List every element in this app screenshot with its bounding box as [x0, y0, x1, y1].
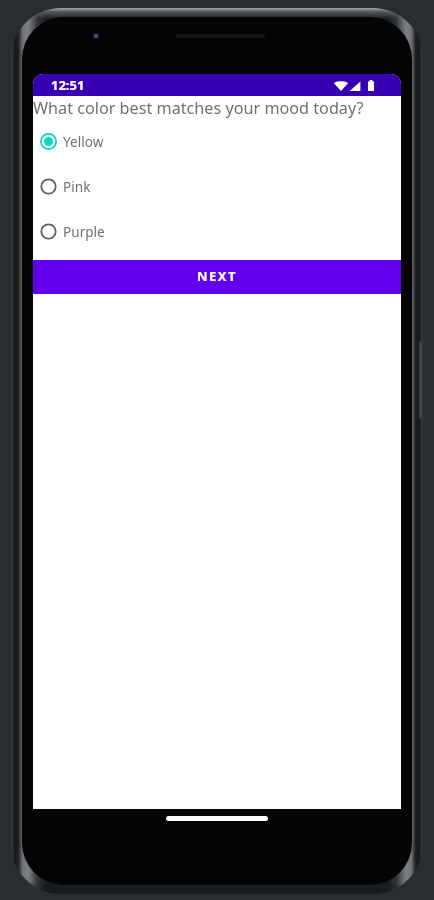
staticText: Pink: [63, 177, 91, 196]
button[interactable]: Purple: [33, 209, 401, 254]
button[interactable]: Yellow: [33, 119, 401, 164]
other: Mobile signal: [349, 79, 361, 91]
button[interactable]: NEXT: [33, 260, 401, 294]
other: Wi-Fi: [334, 79, 348, 91]
button[interactable]: Pink: [33, 164, 401, 209]
staticText: What color best matches your mood today?: [33, 97, 364, 119]
other: Battery: [367, 79, 375, 91]
staticText: NEXT: [197, 267, 238, 285]
staticText: Purple: [63, 222, 105, 241]
staticText: Yellow: [63, 132, 104, 151]
staticText: 12:51: [51, 76, 85, 94]
